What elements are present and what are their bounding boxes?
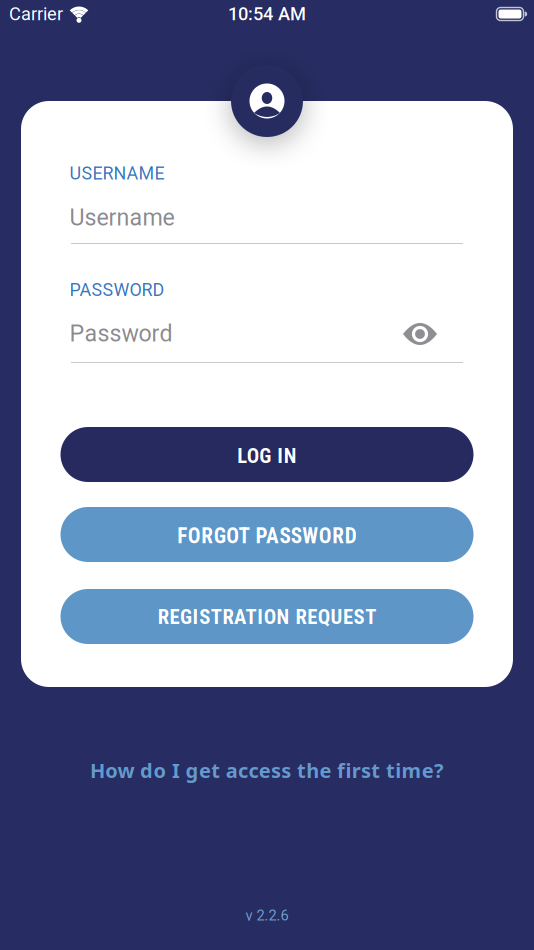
staticText: How do I get access the first time? bbox=[90, 757, 444, 784]
staticText: Password bbox=[69, 320, 172, 347]
staticText: 10:54 AM bbox=[228, 3, 306, 25]
staticText: Username bbox=[69, 204, 174, 231]
staticText: USERNAME bbox=[69, 163, 164, 184]
button[interactable]: How do I get access the first time? bbox=[0, 757, 534, 784]
staticText: Carrier bbox=[9, 3, 63, 25]
staticText: REGISTRATION REQUEST bbox=[158, 605, 376, 629]
staticText: PASSWORD bbox=[69, 279, 164, 300]
button[interactable]: Show password bbox=[403, 323, 437, 345]
staticText: FORGOT PASSWORD bbox=[177, 524, 357, 548]
button[interactable]: LOG IN bbox=[60, 427, 473, 482]
staticText: LOG IN bbox=[237, 444, 297, 468]
button[interactable]: FORGOT PASSWORD bbox=[60, 507, 473, 562]
staticText: v 2.2.6 bbox=[245, 907, 288, 924]
button[interactable]: REGISTRATION REQUEST bbox=[60, 589, 473, 644]
